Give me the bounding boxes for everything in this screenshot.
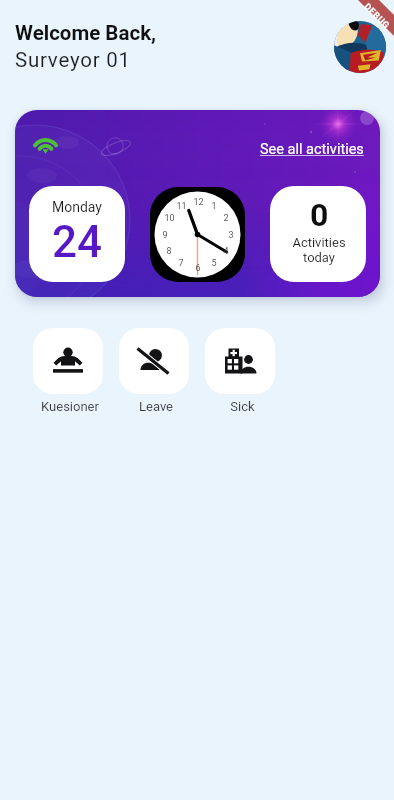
- staticText: 0: [310, 196, 329, 234]
- button[interactable]: Monday: [29, 186, 125, 282]
- button[interactable]: See all activities: [244, 138, 364, 160]
- staticText: 8: [166, 246, 172, 257]
- staticText: 2: [223, 213, 229, 224]
- staticText: Leave: [139, 399, 173, 414]
- staticText: Kuesioner: [41, 399, 99, 414]
- staticText: 5: [211, 258, 217, 269]
- staticText: See all activities: [260, 141, 364, 158]
- button[interactable]: Sick: [205, 328, 275, 394]
- staticText: 24: [52, 216, 103, 268]
- staticText: Monday: [52, 199, 102, 215]
- button[interactable]: Kuesioner: [33, 328, 103, 394]
- button[interactable]: 0: [270, 186, 366, 282]
- staticText: 4: [223, 246, 229, 257]
- staticText: 11: [176, 201, 187, 212]
- staticText: Sick: [230, 399, 255, 414]
- button[interactable]: Leave: [119, 328, 189, 394]
- staticText: 1: [211, 201, 217, 212]
- staticText: 10: [164, 213, 175, 224]
- staticText: 12: [193, 197, 204, 208]
- staticText: Welcome Back,: [15, 21, 157, 45]
- staticText: 3: [228, 230, 234, 241]
- staticText: Surveyor 01: [15, 48, 131, 72]
- staticText: Activities today: [292, 235, 346, 265]
- button[interactable]: Profile photo: [334, 21, 386, 73]
- staticText: DEBUG: [361, 1, 392, 32]
- staticText: 9: [162, 230, 168, 241]
- staticText: 7: [178, 258, 184, 269]
- button[interactable]: See all activities: [15, 110, 380, 297]
- staticText: 6: [195, 263, 201, 274]
- button[interactable]: Clock: [150, 187, 245, 282]
